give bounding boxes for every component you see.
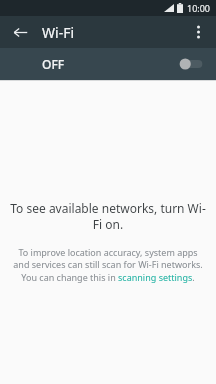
staticText: To see available networks, turn Wi-Fi on… (10, 200, 206, 232)
button[interactable]: OFF (0, 48, 216, 80)
button[interactable]: Navigate up (6, 18, 34, 46)
staticText: To improve location accuracy, system app… (10, 246, 206, 284)
staticText: OFF (42, 56, 65, 72)
staticText: 10:00 (187, 2, 211, 14)
button[interactable]: More options (184, 18, 212, 46)
button[interactable]: To improve location accuracy, system app… (10, 246, 206, 284)
staticText: Wi-Fi (42, 23, 75, 42)
